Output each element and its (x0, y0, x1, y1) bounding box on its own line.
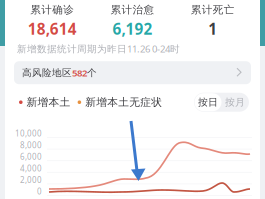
staticText: 6,000 (20, 151, 42, 162)
staticText: 按月 (225, 96, 245, 108)
button[interactable]: 高风险地区 (14, 61, 251, 84)
staticText: 新增本土 (27, 95, 71, 109)
staticText: 1 (208, 18, 217, 39)
staticText: 4,000 (20, 163, 42, 174)
staticText: 累计治愈 (110, 3, 154, 16)
staticText: 累计确诊 (30, 3, 74, 16)
staticText: 2,000 (20, 174, 42, 185)
staticText: 新增数据统计周期为昨日11.26 0-24时 (17, 42, 180, 55)
staticText: 高风险地区 (22, 67, 72, 79)
staticText: 个 (87, 67, 97, 79)
staticText: 新增本土无症状 (85, 95, 162, 109)
button[interactable]: 按月 (221, 93, 248, 111)
staticText: 10,000 (15, 128, 42, 139)
staticText: 0 (37, 186, 42, 197)
staticText: 按日 (198, 96, 218, 108)
staticText: 18,614 (28, 18, 77, 39)
staticText: 8,000 (20, 140, 42, 151)
staticText: 累计死亡 (191, 3, 235, 16)
button[interactable]: 按日 (194, 93, 221, 111)
staticText: 582 (72, 66, 87, 79)
staticText: 6,192 (112, 18, 152, 39)
